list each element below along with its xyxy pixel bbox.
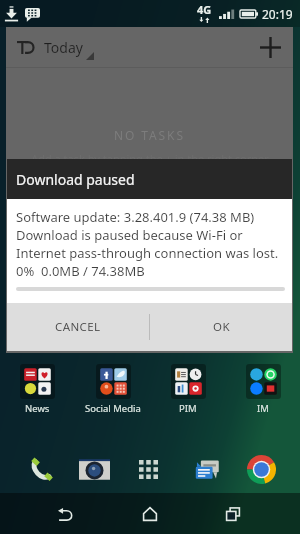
- button[interactable]: News: [0, 358, 74, 414]
- button[interactable]: Messages: [188, 450, 226, 488]
- button[interactable]: Back: [44, 493, 86, 534]
- staticText: CANCEL: [55, 319, 101, 335]
- button[interactable]: Phone: [22, 450, 60, 488]
- button[interactable]: Social Media: [76, 358, 150, 414]
- button[interactable]: Camera: [75, 450, 113, 488]
- staticText: 4G: [197, 2, 212, 17]
- button[interactable]: IM: [226, 358, 300, 414]
- staticText: Download is paused because Wi-Fi or: [16, 226, 243, 244]
- button[interactable]: Add task: [250, 27, 290, 67]
- staticText: 0% 0.0MB / 74.38MB: [16, 262, 145, 280]
- staticText: Software update: 3.28.401.9 (74.38 MB): [16, 208, 255, 226]
- staticText: Today: [44, 38, 83, 57]
- button[interactable]: All apps: [129, 450, 167, 488]
- staticText: Download paused: [16, 170, 135, 189]
- staticText: Internet pass-through connection was los…: [16, 244, 279, 262]
- button[interactable]: CANCEL: [7, 303, 149, 351]
- staticText: Social Media: [85, 402, 141, 414]
- staticText: Add a task by tapping the + in the right…: [31, 151, 269, 166]
- button[interactable]: Recents: [212, 493, 254, 534]
- staticText: News: [25, 402, 50, 414]
- button[interactable]: OK: [150, 303, 292, 351]
- staticText: NO TASKS: [114, 127, 185, 143]
- button[interactable]: PIM: [151, 358, 225, 414]
- button[interactable]: Chrome: [242, 450, 280, 488]
- button[interactable]: Home: [129, 493, 171, 534]
- staticText: 20:19: [262, 6, 293, 22]
- staticText: PIM: [179, 402, 197, 414]
- staticText: IM: [257, 402, 269, 414]
- staticText: OK: [213, 319, 230, 335]
